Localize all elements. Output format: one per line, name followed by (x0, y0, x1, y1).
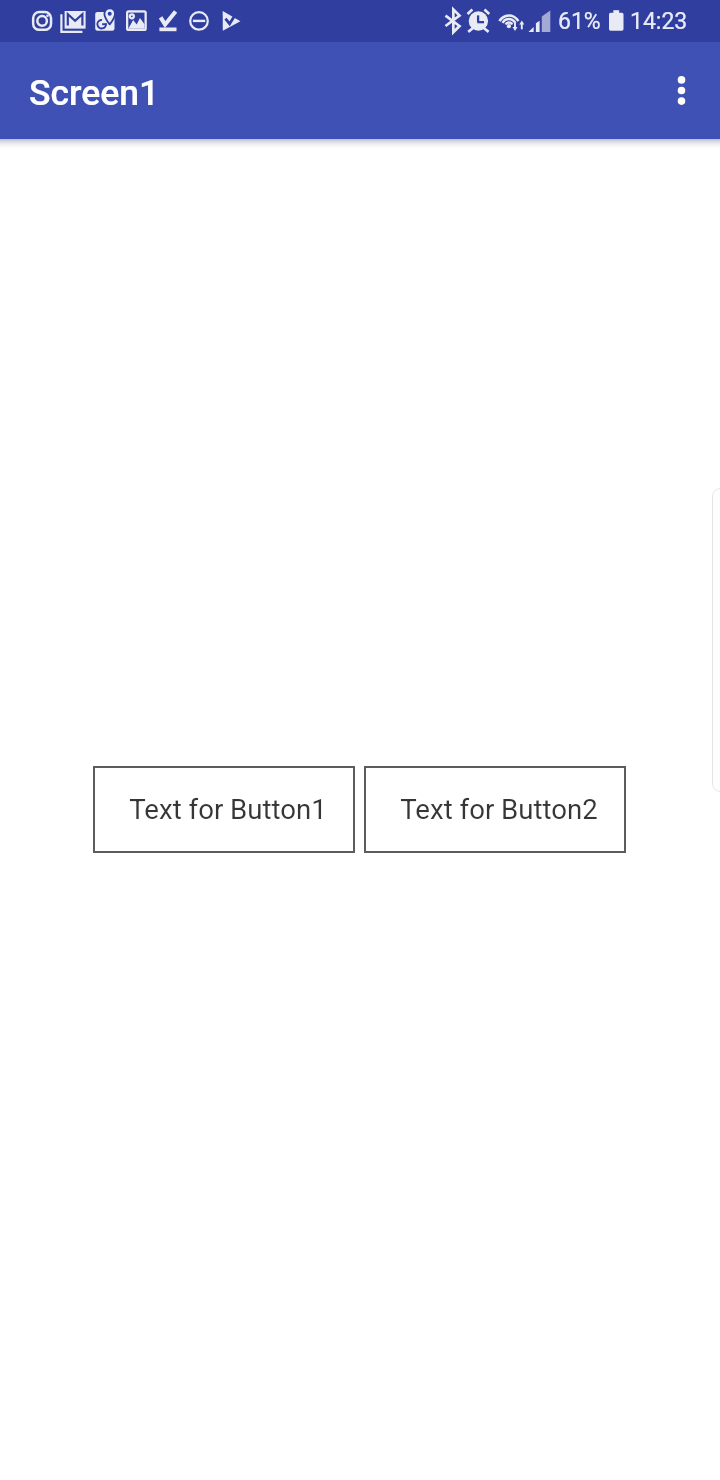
button[interactable]: Text for Button1 (93, 766, 355, 853)
staticText: Text for Button1 (129, 793, 327, 825)
button[interactable]: Text for Button2 (364, 766, 626, 853)
staticText: 61% (558, 8, 601, 35)
staticText: Screen1 (29, 72, 160, 114)
button[interactable]: More options (653, 62, 710, 119)
staticText: 14:23 (630, 8, 688, 35)
staticText: Text for Button2 (400, 793, 598, 825)
